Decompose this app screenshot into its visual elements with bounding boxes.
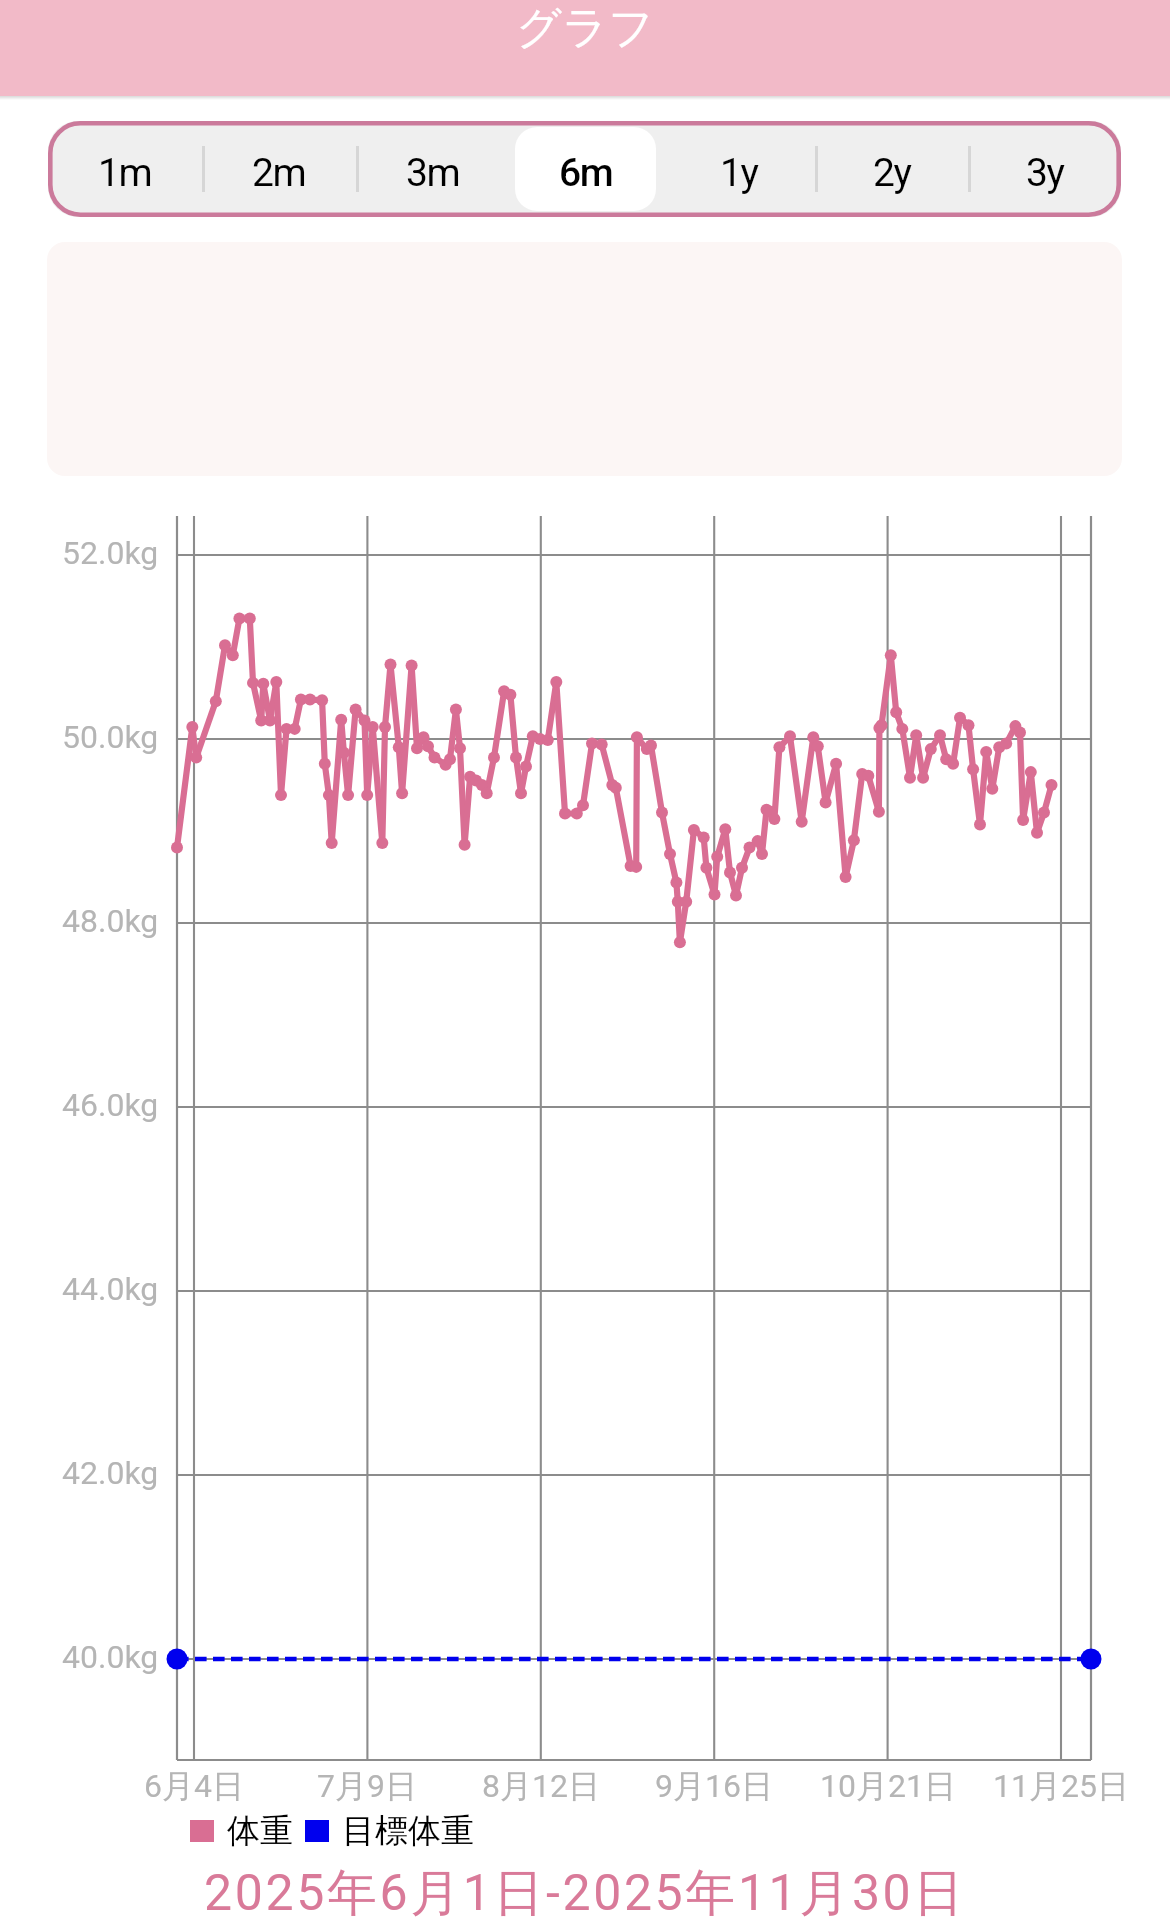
staticText: グラフ	[516, 0, 655, 57]
staticText: 3y	[1026, 150, 1064, 196]
staticText: 46.0kg	[62, 1086, 159, 1124]
staticText: 2025年6月1日-2025年11月30日	[204, 1862, 966, 1918]
staticText: 40.0kg	[62, 1638, 159, 1676]
button[interactable]: 6m	[509, 121, 662, 217]
staticText: 9月16日	[655, 1766, 773, 1806]
button[interactable]: 1y	[662, 121, 815, 217]
staticText: 8月12日	[482, 1766, 600, 1806]
button[interactable]: 2y	[815, 121, 968, 217]
button[interactable]: 1m	[48, 121, 202, 217]
staticText: 目標体重	[342, 1810, 474, 1852]
staticText: 1y	[720, 150, 758, 196]
staticText: 48.0kg	[62, 902, 159, 940]
button[interactable]: 2m	[202, 121, 356, 217]
staticText: 6m	[559, 150, 613, 196]
staticText: 7月9日	[317, 1766, 417, 1806]
staticText: 50.0kg	[62, 718, 159, 756]
staticText: 11月25日	[993, 1766, 1129, 1806]
button[interactable]: 3y	[968, 121, 1121, 217]
staticText: 6月4日	[144, 1766, 244, 1806]
staticText: 10月21日	[820, 1766, 956, 1806]
staticText: 2y	[873, 150, 911, 196]
staticText: 42.0kg	[62, 1454, 159, 1492]
staticText: 44.0kg	[62, 1270, 159, 1308]
staticText: 2m	[252, 150, 306, 196]
staticText: 体重	[227, 1810, 293, 1852]
staticText: 3m	[406, 150, 460, 196]
button[interactable]: 3m	[356, 121, 509, 217]
staticText: 1m	[98, 150, 152, 196]
staticText: 52.0kg	[62, 534, 159, 572]
